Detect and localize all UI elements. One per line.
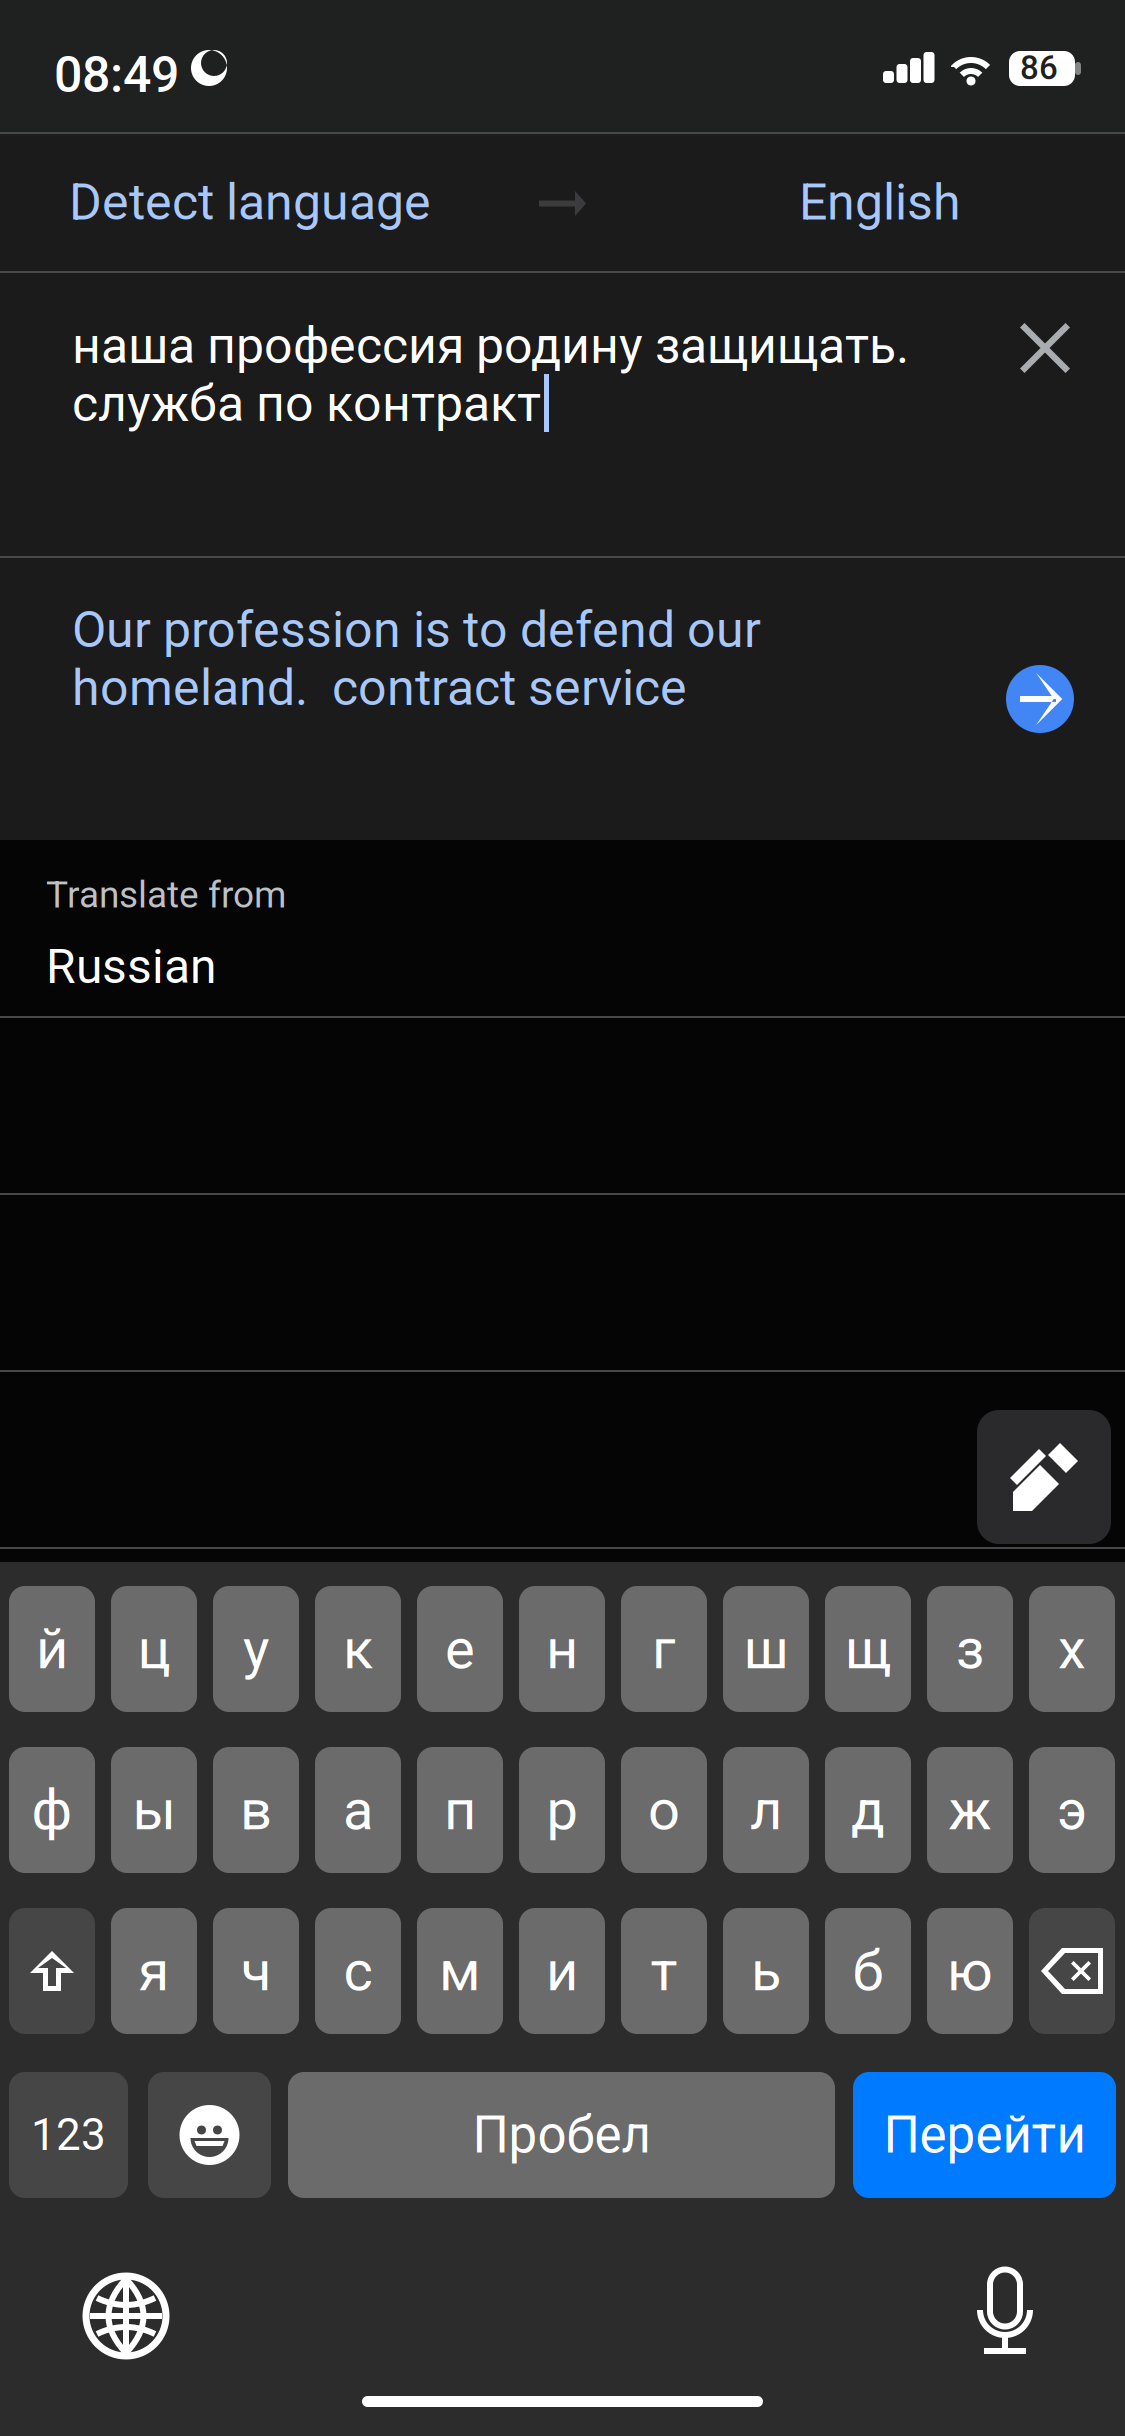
button[interactable]: р: [519, 1747, 605, 1873]
button[interactable]: о: [621, 1747, 707, 1873]
button[interactable]: Detect language: [30, 134, 470, 271]
staticText: ь: [751, 1938, 781, 2004]
button[interactable]: э: [1029, 1747, 1115, 1873]
staticText: служба по контракт: [72, 375, 541, 433]
staticText: и: [546, 1938, 578, 2004]
button[interactable]: Next keyboard: [86, 2276, 166, 2356]
button[interactable]: Shift: [9, 1908, 95, 2034]
button[interactable]: д: [825, 1747, 911, 1873]
button[interactable]: т: [621, 1908, 707, 2034]
button[interactable]: Пробел: [288, 2072, 835, 2198]
button[interactable]: ю: [927, 1908, 1013, 2034]
staticText: г: [652, 1616, 676, 1682]
staticText: Перейти: [883, 2105, 1085, 2165]
button[interactable]: Handwriting input: [977, 1410, 1111, 1544]
button[interactable]: з: [927, 1586, 1013, 1712]
staticText: а: [343, 1777, 373, 1843]
button[interactable]: 123: [9, 2072, 128, 2198]
staticText: д: [851, 1777, 885, 1843]
button[interactable]: Перейти: [853, 2072, 1116, 2198]
staticText: Пробел: [472, 2105, 650, 2165]
button[interactable]: у: [213, 1586, 299, 1712]
staticText: ю: [947, 1938, 993, 2004]
staticText: б: [852, 1938, 883, 2004]
button[interactable]: Dictation: [976, 2268, 1034, 2360]
button[interactable]: б: [825, 1908, 911, 2034]
staticText: з: [956, 1616, 984, 1682]
button[interactable]: к: [315, 1586, 401, 1712]
staticText: м: [439, 1938, 481, 2004]
button[interactable]: г: [621, 1586, 707, 1712]
button[interactable]: и: [519, 1908, 605, 2034]
button[interactable]: ч: [213, 1908, 299, 2034]
button[interactable]: щ: [825, 1586, 911, 1712]
staticText: ч: [241, 1938, 271, 2004]
staticText: у: [243, 1616, 269, 1682]
button[interactable]: ь: [723, 1908, 809, 2034]
button[interactable]: Translate: [1006, 665, 1074, 733]
staticText: п: [444, 1777, 476, 1843]
staticText: Russian: [46, 938, 217, 995]
staticText: homeland. contract service: [72, 659, 687, 717]
staticText: 08:49: [54, 46, 179, 104]
button[interactable]: Clear text: [1000, 303, 1090, 393]
staticText: ц: [137, 1616, 170, 1682]
staticText: ф: [31, 1777, 72, 1843]
button[interactable]: ы: [111, 1747, 197, 1873]
staticText: н: [546, 1616, 578, 1682]
staticText: к: [343, 1616, 373, 1682]
staticText: 86: [1020, 49, 1058, 87]
staticText: ы: [132, 1777, 175, 1843]
staticText: Detect language: [69, 173, 431, 232]
button[interactable]: л: [723, 1747, 809, 1873]
button[interactable]: ф: [9, 1747, 95, 1873]
button[interactable]: м: [417, 1908, 503, 2034]
staticText: о: [648, 1777, 680, 1843]
staticText: English: [799, 173, 961, 232]
button[interactable]: н: [519, 1586, 605, 1712]
staticText: с: [343, 1938, 372, 2004]
staticText: в: [240, 1777, 272, 1843]
button[interactable]: Delete: [1029, 1908, 1115, 2034]
button[interactable]: Emoji keyboard: [148, 2072, 271, 2198]
staticText: 123: [31, 2109, 106, 2161]
staticText: е: [445, 1616, 475, 1682]
staticText: наша профессия родину защищать.: [72, 317, 909, 375]
button[interactable]: English: [690, 134, 1070, 271]
staticText: щ: [845, 1616, 891, 1682]
button[interactable]: е: [417, 1586, 503, 1712]
button[interactable]: я: [111, 1908, 197, 2034]
button[interactable]: ш: [723, 1586, 809, 1712]
button[interactable]: ж: [927, 1747, 1013, 1873]
staticText: я: [138, 1938, 169, 2004]
staticText: х: [1058, 1616, 1086, 1682]
button[interactable]: в: [213, 1747, 299, 1873]
staticText: ш: [743, 1616, 788, 1682]
staticText: Our profession is to defend our: [72, 601, 761, 659]
button[interactable]: й: [9, 1586, 95, 1712]
button[interactable]: а: [315, 1747, 401, 1873]
staticText: т: [650, 1938, 677, 2004]
button[interactable]: ц: [111, 1586, 197, 1712]
button[interactable]: п: [417, 1747, 503, 1873]
staticText: р: [546, 1777, 577, 1843]
staticText: й: [36, 1616, 68, 1682]
staticText: ж: [948, 1777, 991, 1843]
button[interactable]: с: [315, 1908, 401, 2034]
staticText: э: [1057, 1777, 1087, 1843]
staticText: Translate from: [46, 873, 286, 917]
staticText: л: [750, 1777, 782, 1843]
button[interactable]: х: [1029, 1586, 1115, 1712]
